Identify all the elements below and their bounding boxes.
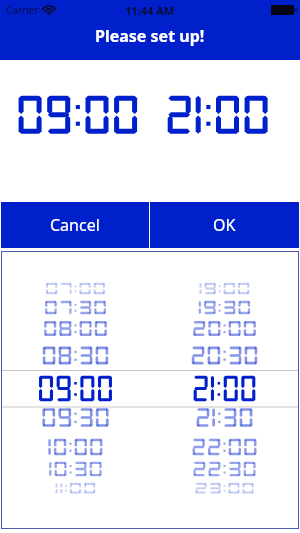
staticText: OK (213, 214, 236, 236)
staticText: Please set up! (95, 25, 205, 47)
button[interactable] (1, 251, 150, 529)
button[interactable]: OK (150, 202, 299, 248)
staticText: Cancel (50, 214, 100, 236)
button[interactable]: Cancel (1, 202, 149, 248)
staticText: Carrier (6, 3, 39, 17)
button[interactable] (150, 251, 299, 529)
staticText: 11:44 AM (125, 3, 175, 18)
